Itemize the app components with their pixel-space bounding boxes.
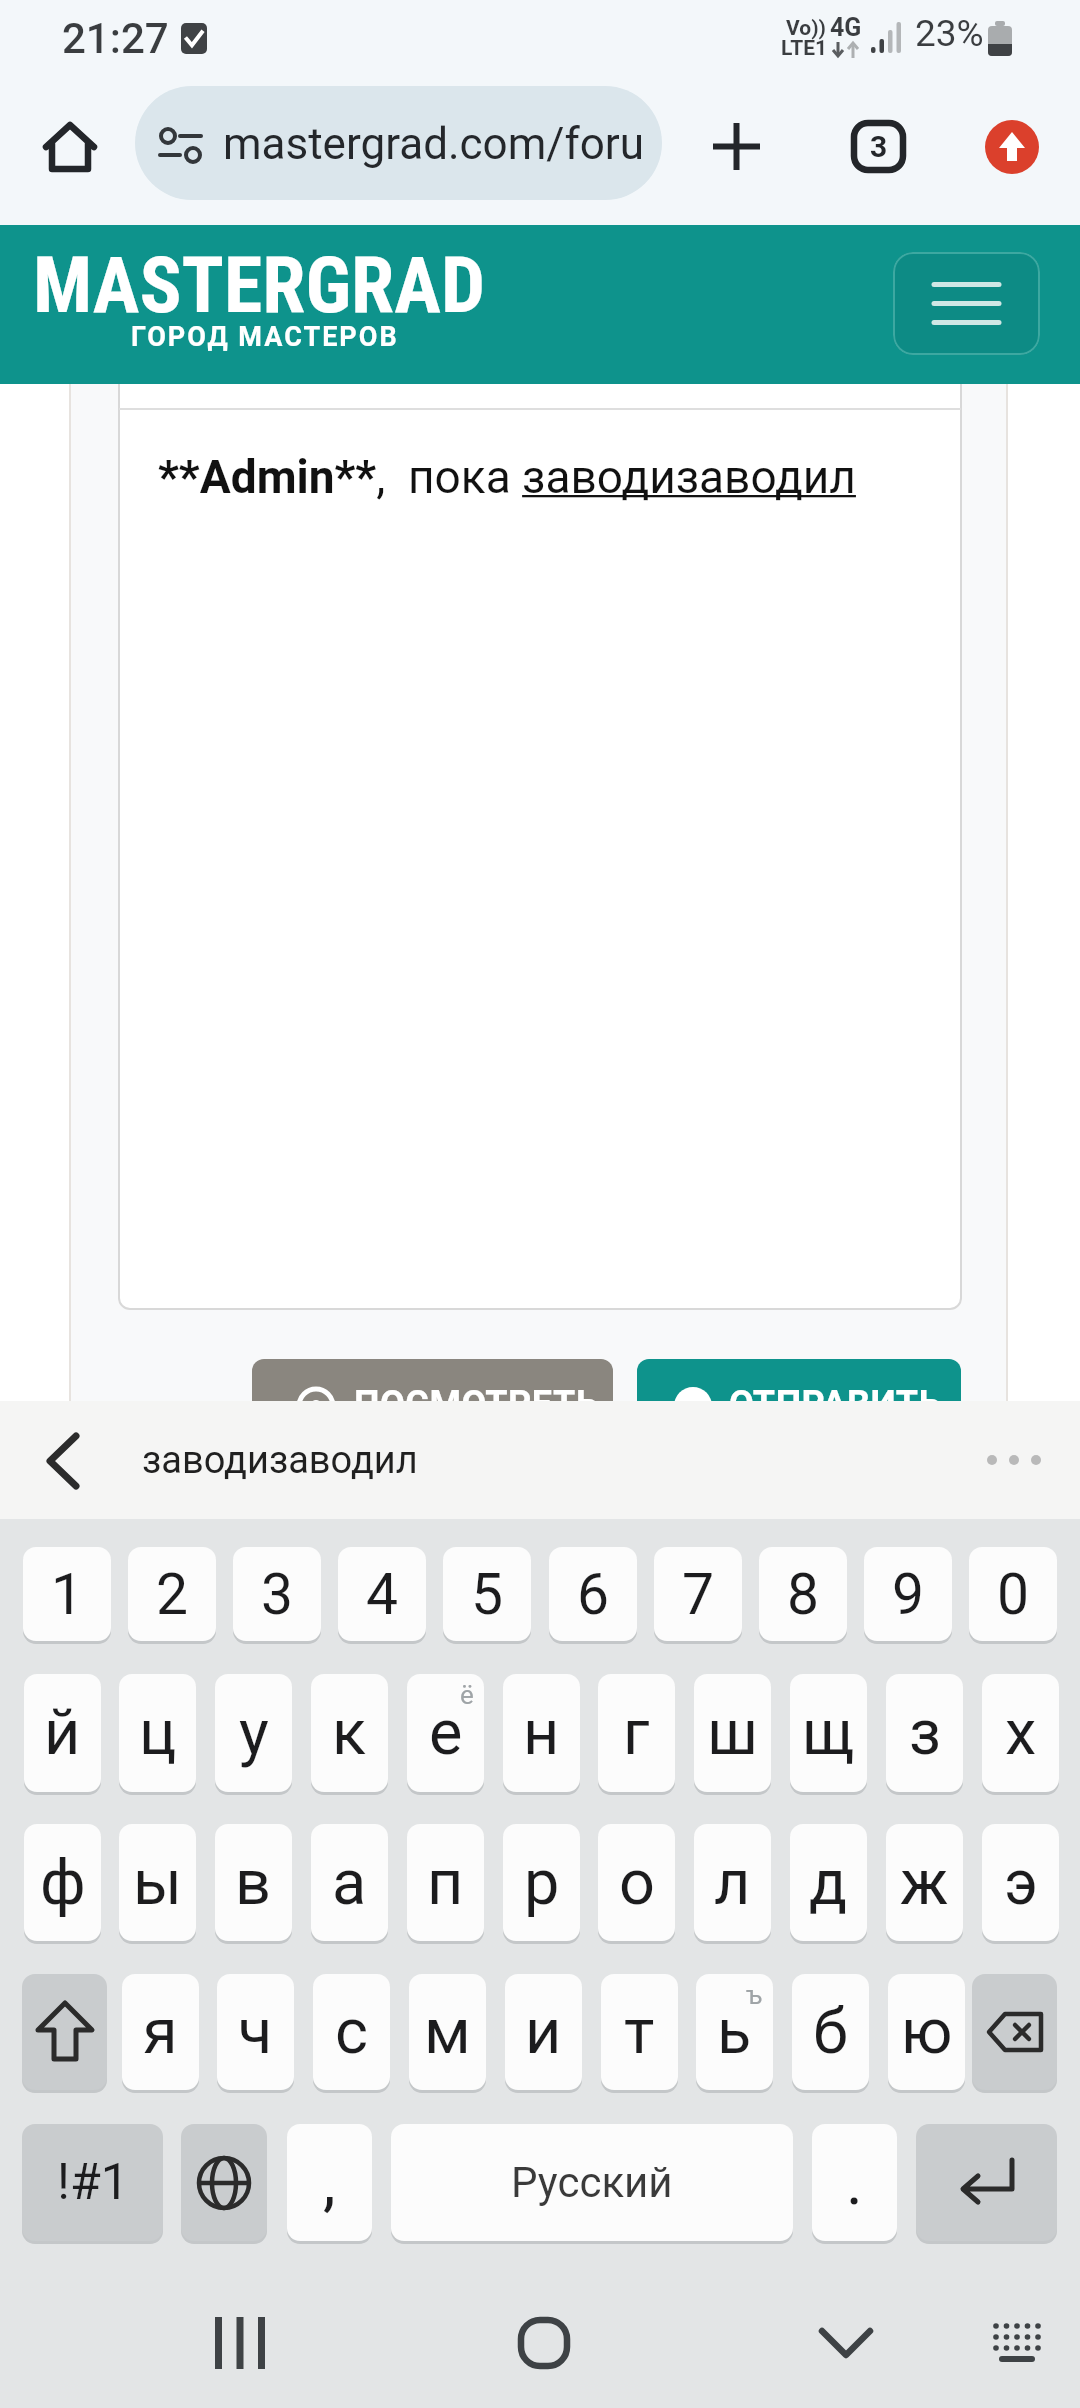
button[interactable]: и [505, 1974, 582, 2090]
staticText: г [623, 1696, 650, 1770]
staticText: ю [901, 1995, 953, 2069]
button[interactable]: с [313, 1974, 390, 2090]
button[interactable] [22, 1974, 107, 2090]
button[interactable]: з [886, 1674, 963, 1792]
button[interactable]: 0 [969, 1547, 1057, 1641]
button[interactable] [893, 252, 1040, 355]
button[interactable]: 7 [654, 1547, 742, 1641]
button[interactable]: ц [119, 1674, 196, 1792]
staticText: 5 [471, 1561, 504, 1628]
button[interactable]: 3 [851, 120, 906, 173]
button[interactable]: !#1 [22, 2124, 163, 2241]
button[interactable]: х [982, 1674, 1059, 1792]
button[interactable]: м [409, 1974, 486, 2090]
staticText: . [846, 2145, 863, 2220]
staticText: п [427, 1846, 464, 1920]
staticText: ы [133, 1846, 182, 1920]
staticText: т [624, 1995, 655, 2069]
staticText: ь [717, 1995, 752, 2069]
staticText: 21:27 [62, 14, 169, 63]
button[interactable]: ю [888, 1974, 965, 2090]
staticText: у [239, 1696, 269, 1770]
button[interactable]: к [311, 1674, 388, 1792]
staticText: 4 [366, 1561, 399, 1628]
button[interactable]: 9 [864, 1547, 952, 1641]
button[interactable]: . [812, 2124, 897, 2241]
staticText: mastergrad.com/foru [223, 118, 644, 170]
staticText: к [332, 1696, 367, 1770]
staticText: р [524, 1846, 560, 1920]
staticText: с [335, 1995, 368, 2069]
button[interactable]: н [503, 1674, 580, 1792]
button[interactable]: 3 [233, 1547, 321, 1641]
staticText: д [809, 1846, 848, 1920]
button[interactable]: ж [886, 1824, 963, 1941]
staticText: 1 [51, 1561, 84, 1628]
button[interactable] [985, 120, 1039, 174]
button[interactable]: ы [119, 1824, 196, 1941]
staticText: MASTERGRAD [33, 240, 485, 331]
button[interactable]: т [601, 1974, 678, 2090]
button[interactable]: 4 [338, 1547, 426, 1641]
button[interactable]: у [215, 1674, 292, 1792]
button[interactable]: ч [217, 1974, 294, 2090]
button[interactable]: 6 [549, 1547, 637, 1641]
button[interactable] [916, 2124, 1057, 2241]
button[interactable]: э [982, 1824, 1059, 1941]
button[interactable]: д [790, 1824, 867, 1941]
staticText: ц [139, 1696, 177, 1770]
staticText: я [143, 1995, 178, 2069]
button[interactable]: г [598, 1674, 675, 1792]
button[interactable]: 1 [23, 1547, 111, 1641]
staticText: н [523, 1696, 560, 1770]
button[interactable]: 2 [128, 1547, 216, 1641]
button[interactable]: е [407, 1674, 484, 1792]
button[interactable] [44, 120, 96, 172]
button[interactable]: заводизаводил [130, 1411, 430, 1509]
button[interactable]: в [215, 1824, 292, 1941]
button[interactable]: 8 [759, 1547, 847, 1641]
button[interactable] [181, 2124, 267, 2241]
button[interactable]: ш [694, 1674, 771, 1792]
staticText: 8 [787, 1561, 820, 1628]
staticText: и [525, 1995, 562, 2069]
button[interactable]: ф [24, 1824, 101, 1941]
staticText: ч [238, 1995, 273, 2069]
staticText: LTE1 [781, 36, 828, 61]
button[interactable]: о [598, 1824, 675, 1941]
button[interactable] [14, 1415, 114, 1505]
staticText: 3 [870, 129, 888, 164]
button[interactable]: ОТПРАВИТЬ [637, 1359, 961, 1401]
button[interactable]: я [122, 1974, 199, 2090]
button[interactable]: , [287, 2124, 372, 2241]
staticText: ОТПРАВИТЬ [729, 1383, 942, 1401]
button[interactable]: Русский [391, 2124, 793, 2241]
button[interactable] [972, 1974, 1057, 2090]
staticText: 4G [830, 13, 862, 42]
button[interactable] [985, 1453, 1045, 1467]
button[interactable]: р [503, 1824, 580, 1941]
staticText: !#1 [57, 2153, 129, 2212]
button[interactable]: п [407, 1824, 484, 1941]
staticText: ПОСМОТРЕТЬ [354, 1383, 599, 1401]
button[interactable] [190, 2293, 290, 2393]
staticText: ъ [746, 1980, 763, 2010]
button[interactable] [494, 2293, 594, 2393]
button[interactable]: ПОСМОТРЕТЬ [252, 1359, 613, 1401]
staticText: ш [707, 1696, 758, 1770]
staticText: ж [900, 1846, 949, 1920]
button[interactable]: л [694, 1824, 771, 1941]
button[interactable]: й [24, 1674, 101, 1792]
button[interactable]: ь [696, 1974, 773, 2090]
button[interactable] [796, 2293, 896, 2393]
button[interactable]: mastergrad.com/foru [135, 86, 662, 200]
staticText: х [1005, 1696, 1037, 1770]
button[interactable]: щ [790, 1674, 867, 1792]
button[interactable] [713, 123, 760, 170]
staticText: ГОРОД МАСТЕРОВ [131, 321, 399, 353]
button[interactable]: 5 [443, 1547, 531, 1641]
button[interactable] [975, 2299, 1059, 2383]
staticText: л [714, 1846, 751, 1920]
button[interactable]: б [792, 1974, 869, 2090]
button[interactable]: а [311, 1824, 388, 1941]
